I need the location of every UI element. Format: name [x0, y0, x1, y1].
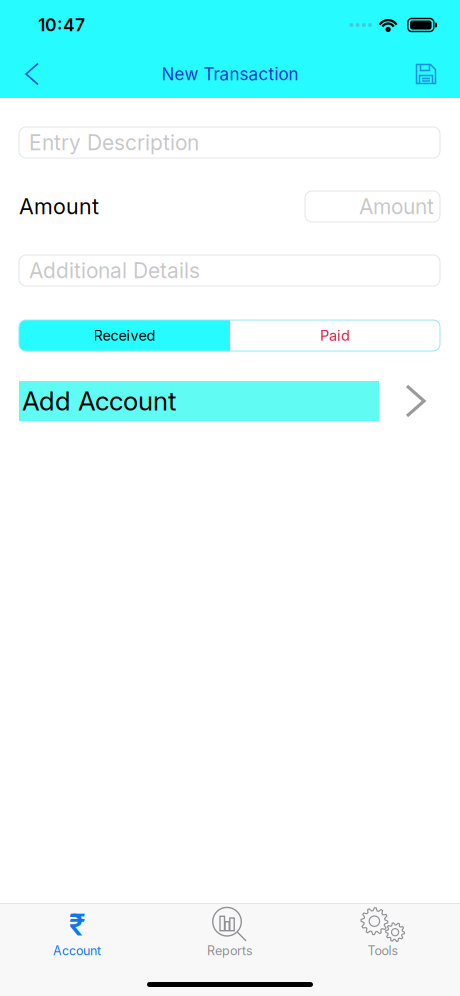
- button[interactable]: Add Account: [19, 381, 460, 421]
- button[interactable]: Back: [10, 52, 54, 96]
- button[interactable]: Reports: [153, 907, 306, 959]
- button[interactable]: ₹: [0, 907, 153, 959]
- button[interactable]: Tools: [306, 907, 459, 959]
- button[interactable]: Paid: [230, 320, 440, 351]
- button[interactable]: Save: [404, 52, 448, 96]
- staticText: Tools: [367, 943, 398, 958]
- staticText: Received: [93, 327, 155, 344]
- staticText: Amount: [19, 193, 99, 219]
- staticText: Additional Details: [29, 258, 200, 283]
- staticText: Entry Description: [29, 130, 199, 155]
- staticText: Paid: [320, 327, 350, 344]
- staticText: Reports: [207, 943, 253, 958]
- button[interactable]: Received: [19, 320, 230, 351]
- staticText: ₹: [69, 907, 85, 943]
- staticText: New Transaction: [161, 64, 298, 84]
- staticText: 10:47: [38, 14, 85, 36]
- staticText: Amount: [359, 194, 434, 219]
- staticText: Add Account: [22, 385, 176, 417]
- staticText: Account: [53, 943, 101, 958]
